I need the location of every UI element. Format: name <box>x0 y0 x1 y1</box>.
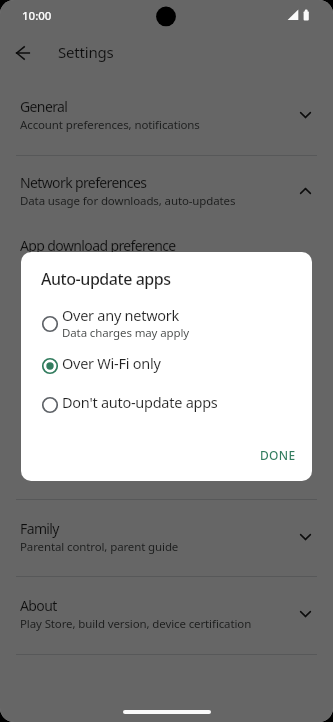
staticText: Data usage for downloads, auto-updates <box>20 193 236 209</box>
button[interactable]: General <box>0 92 333 154</box>
button[interactable]: Back <box>7 37 39 69</box>
staticText: Data charges may apply <box>62 325 190 341</box>
button[interactable]: Don't auto-update apps <box>21 392 312 418</box>
staticText: Network preferences <box>20 173 147 192</box>
button[interactable]: About <box>0 591 333 653</box>
staticText: Over Wi-Fi only <box>62 353 161 373</box>
button[interactable]: DONE <box>252 439 304 471</box>
staticText: General <box>20 97 68 116</box>
staticText: Account preferences, notifications <box>20 117 200 133</box>
button[interactable]: Family <box>0 514 333 576</box>
staticText: Parental control, parent guide <box>20 539 179 555</box>
staticText: Family <box>20 519 59 538</box>
button[interactable]: Over Wi-Fi only <box>21 353 312 379</box>
staticText: Play Store, build version, device certif… <box>20 616 252 632</box>
staticText: DONE <box>260 447 296 463</box>
staticText: Over any network <box>62 305 180 325</box>
button[interactable]: Over any network <box>21 305 312 343</box>
staticText: Settings <box>58 42 114 62</box>
staticText: About <box>20 596 57 615</box>
staticText: App download preference <box>20 236 176 255</box>
button[interactable]: Network preferences <box>0 168 333 230</box>
staticText: Don't auto-update apps <box>62 392 218 412</box>
staticText: Auto-update apps <box>41 268 171 290</box>
staticText: 10:00 <box>22 8 52 24</box>
